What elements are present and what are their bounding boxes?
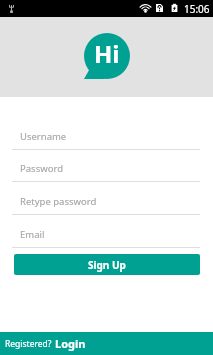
- staticText: Login: [55, 336, 86, 351]
- staticText: Hi: [94, 37, 120, 70]
- staticText: Email: [20, 228, 45, 241]
- staticText: Username: [20, 130, 67, 143]
- button[interactable]: Registered?: [0, 332, 213, 355]
- staticText: Retype password: [20, 195, 97, 208]
- button[interactable]: Email: [12, 228, 200, 248]
- staticText: Registered?: [5, 338, 52, 350]
- button[interactable]: Retype password: [12, 195, 200, 215]
- staticText: 15:06: [184, 2, 210, 16]
- staticText: Sign Up: [88, 258, 126, 272]
- staticText: Password: [20, 162, 63, 175]
- button[interactable]: Password: [12, 162, 200, 182]
- button[interactable]: Username: [12, 130, 200, 150]
- button[interactable]: Sign Up: [14, 254, 200, 275]
